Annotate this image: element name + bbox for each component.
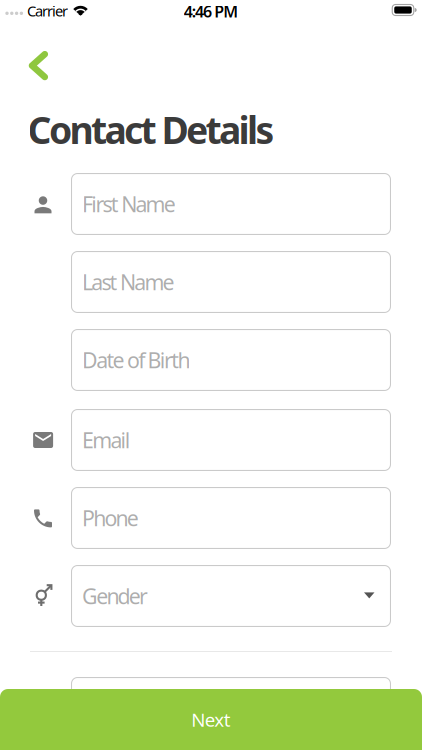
staticText: Email (82, 426, 131, 454)
button[interactable]: Phone (71, 487, 391, 549)
button[interactable]: First Name (71, 173, 391, 235)
staticText: Carrier (27, 1, 68, 21)
staticText: Gender (82, 582, 148, 610)
staticText: 4:46 PM (184, 1, 238, 22)
staticText: Contact Details (27, 105, 274, 154)
button[interactable]: Next (0, 689, 422, 750)
button[interactable]: Back (16, 44, 60, 88)
button[interactable]: Date of Birth (71, 329, 391, 391)
button[interactable]: Email (71, 409, 391, 471)
staticText: Phone (82, 504, 139, 532)
staticText: Last Name (82, 268, 175, 296)
button[interactable]: Last Name (71, 251, 391, 313)
staticText: Date of Birth (82, 346, 190, 374)
staticText: Next (191, 707, 231, 732)
staticText: First Name (82, 190, 176, 218)
button[interactable]: Gender (71, 565, 391, 627)
